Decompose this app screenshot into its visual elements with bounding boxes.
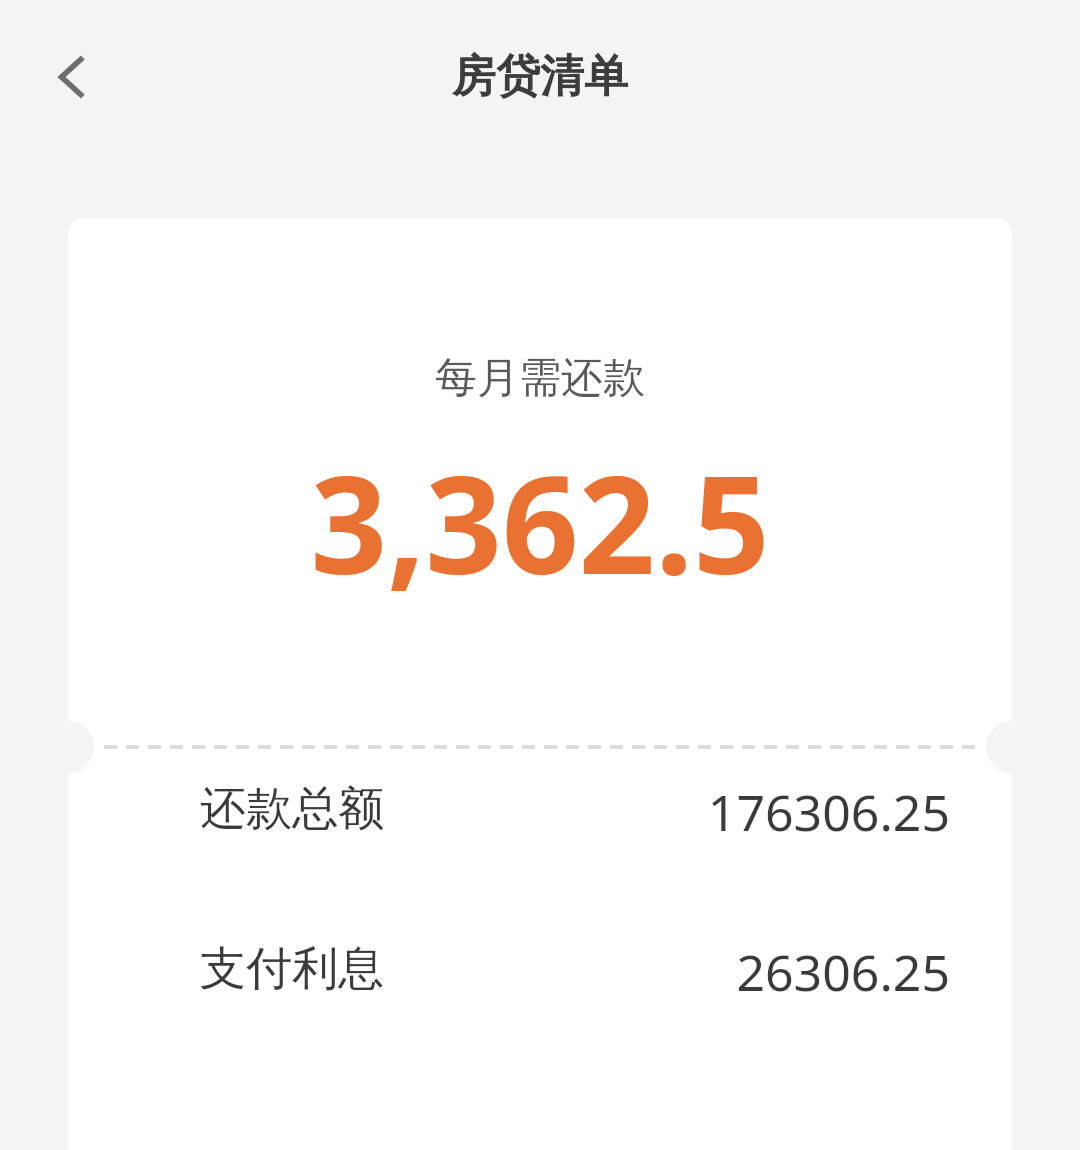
staticText: 26306.25 xyxy=(736,938,950,1000)
button[interactable] xyxy=(68,218,1012,1150)
staticText: 每月需还款 xyxy=(435,352,645,405)
staticText: 3,362.5 xyxy=(310,431,770,614)
staticText: 176306.25 xyxy=(707,778,950,840)
button[interactable]: 支付利息 xyxy=(200,938,950,1000)
staticText: 还款总额 xyxy=(200,780,384,838)
button[interactable]: 还款总额 xyxy=(200,778,950,840)
staticText: 支付利息 xyxy=(200,940,384,998)
button[interactable]: Back xyxy=(32,37,112,117)
staticText: 房贷清单 xyxy=(452,49,628,104)
